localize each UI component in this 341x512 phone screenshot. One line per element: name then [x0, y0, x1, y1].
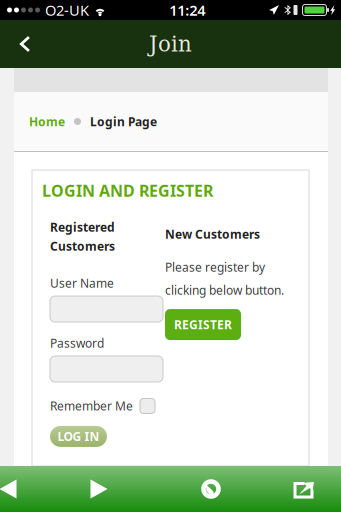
staticText: Registered — [50, 219, 115, 235]
button[interactable]: Reload — [164, 466, 257, 512]
staticText: LOGIN AND REGISTER — [42, 180, 213, 201]
button[interactable]: Back — [0, 466, 33, 512]
staticText: 11:24 — [169, 0, 205, 20]
button[interactable]: Forward — [33, 466, 164, 512]
staticText: REGISTER — [174, 317, 232, 332]
staticText: Remember Me — [50, 398, 133, 414]
staticText: Join — [149, 32, 192, 56]
staticText: User Name — [50, 275, 114, 291]
button[interactable]: Remember Me checkbox — [133, 398, 155, 413]
staticText: clicking below button. — [165, 282, 284, 298]
button[interactable]: Share — [257, 466, 341, 512]
staticText: New Customers — [165, 226, 260, 242]
staticText: Home — [29, 113, 65, 129]
button[interactable]: LOG IN — [50, 426, 107, 447]
staticText: Password — [50, 335, 104, 351]
staticText: Customers — [50, 238, 115, 254]
staticText: Please register by — [165, 259, 265, 275]
button[interactable]: Back — [0, 21, 45, 66]
button[interactable]: Home — [29, 113, 65, 129]
staticText: LOG IN — [57, 428, 99, 444]
staticText: Login Page — [90, 113, 157, 129]
button[interactable]: REGISTER — [165, 309, 241, 340]
staticText: O2-UK — [45, 0, 89, 20]
